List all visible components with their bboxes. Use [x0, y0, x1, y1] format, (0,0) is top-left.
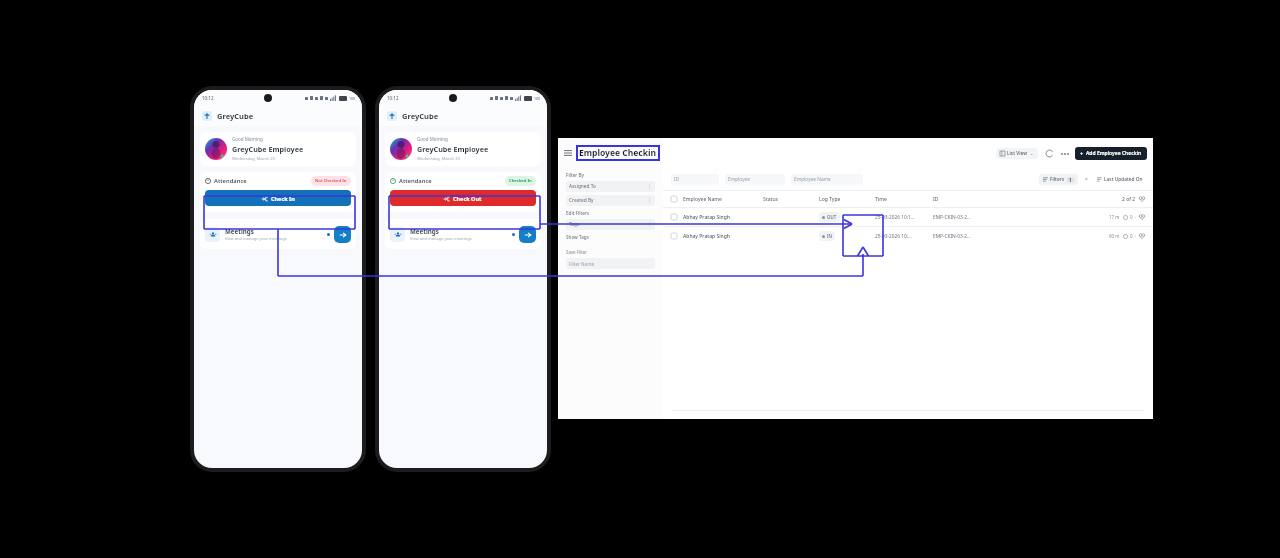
staticText: Filter Name [569, 261, 595, 267]
staticText: 100 [349, 96, 356, 101]
staticText: GreyCube [402, 111, 439, 121]
staticText: ⋮ [647, 184, 652, 189]
staticText: Not Checked In [315, 178, 347, 184]
staticText: Last Updated On [1104, 176, 1143, 183]
staticText: Wednesday, March 25 [417, 156, 461, 162]
staticText: ⋮ [647, 222, 652, 227]
staticText: GreyCube Employee [417, 144, 489, 154]
staticText: Filter By [566, 172, 584, 178]
button[interactable]: Abhay Pratap Singh [663, 227, 1153, 245]
staticText: 25-03-2026 10:1… [875, 214, 933, 221]
staticText: 25-03-2026 10:… [875, 233, 933, 240]
staticText: + [1080, 150, 1084, 157]
staticText: Meetings [225, 227, 254, 235]
staticText: 0 [1130, 214, 1133, 220]
staticText: GreyCube [217, 111, 254, 121]
staticText: ⌄ [1030, 151, 1034, 156]
staticText: 0 [1130, 233, 1133, 239]
button[interactable]: Meetings [200, 219, 356, 249]
staticText: Check Out [453, 195, 482, 202]
staticText: Abhay Pratap Singh [683, 214, 763, 221]
button[interactable]: Sidebar toggle [563, 148, 573, 158]
staticText: 10:12 [387, 95, 399, 101]
staticText: View and manage your meetings [410, 236, 472, 241]
button[interactable]: Clear filters [1082, 175, 1090, 183]
staticText: Employee Name [683, 196, 763, 203]
staticText: Save Filter [566, 249, 588, 255]
button[interactable]: Refresh [1044, 148, 1055, 159]
staticText: 17 m [1109, 214, 1123, 220]
button[interactable]: Employee [725, 174, 785, 185]
staticText: Attendance [399, 177, 432, 185]
staticText: IN [827, 233, 832, 239]
staticText: EMP-CKIN-03-2… [933, 233, 1109, 240]
button[interactable]: Meetings [385, 219, 541, 249]
staticText: 60 m [1109, 233, 1123, 239]
staticText: × [1085, 176, 1088, 183]
staticText: · [1135, 233, 1137, 239]
staticText: Status [763, 196, 819, 203]
staticText: Good Morning [232, 136, 263, 142]
staticText: Meetings [410, 227, 439, 235]
button[interactable]: Menu [387, 111, 397, 121]
button[interactable]: + [1075, 147, 1147, 160]
staticText: EMP-CKIN-03-2… [933, 214, 1109, 221]
staticText: GreyCube Employee [232, 144, 304, 154]
staticText: View and manage your meetings [225, 236, 287, 241]
staticText: ID [933, 196, 1122, 203]
button[interactable]: Good Morning [385, 132, 541, 166]
staticText: 2 of 2 [1122, 196, 1136, 203]
staticText: Employee Name [794, 176, 831, 183]
button[interactable]: List View [996, 148, 1038, 159]
button[interactable]: Good Morning [200, 132, 356, 166]
staticText: Abhay Pratap Singh [683, 233, 763, 240]
staticText: Tags [569, 221, 580, 228]
button[interactable]: Open meetings [519, 226, 536, 243]
staticText: 100 [534, 96, 541, 101]
staticText: Assigned To [569, 183, 596, 190]
staticText: OUT [827, 214, 837, 220]
staticText: Filters [1050, 176, 1065, 183]
staticText: ⋮ [647, 198, 652, 203]
staticText: Check In [271, 195, 295, 202]
button[interactable]: Assigned To [566, 181, 655, 192]
staticText: Created By [569, 197, 594, 204]
button[interactable]: Filters [1039, 174, 1078, 185]
button[interactable]: Check In [205, 190, 351, 206]
staticText: 1 [1069, 177, 1072, 183]
staticText: Employee Checkin [579, 147, 657, 159]
staticText: Log Type [819, 196, 875, 203]
button[interactable]: Open meetings [334, 226, 351, 243]
staticText: Good Morning [417, 136, 448, 142]
staticText: Edit Filters [566, 210, 590, 216]
button[interactable]: Check Out [390, 190, 536, 206]
staticText: Attendance [214, 177, 247, 185]
staticText: Time [875, 196, 933, 203]
button[interactable]: Menu [202, 111, 212, 121]
button[interactable]: Last Updated On [1095, 176, 1145, 183]
staticText: Wednesday, March 25 [232, 156, 276, 162]
staticText: List View [1007, 150, 1028, 157]
button[interactable]: Tags [566, 219, 655, 230]
button[interactable]: More options [1059, 148, 1070, 159]
button[interactable]: Employee Name [791, 174, 863, 185]
staticText: Checked In [509, 178, 532, 184]
button[interactable]: Created By [566, 195, 655, 206]
staticText: · [1135, 214, 1137, 220]
button[interactable]: Abhay Pratap Singh [663, 208, 1153, 226]
button[interactable]: Filter Name [566, 258, 655, 269]
button[interactable]: ID [671, 174, 719, 185]
staticText: Show Tags [566, 234, 589, 240]
staticText: 10:12 [202, 95, 214, 101]
staticText: Employee [728, 176, 751, 183]
staticText: ID [674, 176, 680, 183]
staticText: Add Employee Checkin [1086, 150, 1142, 157]
